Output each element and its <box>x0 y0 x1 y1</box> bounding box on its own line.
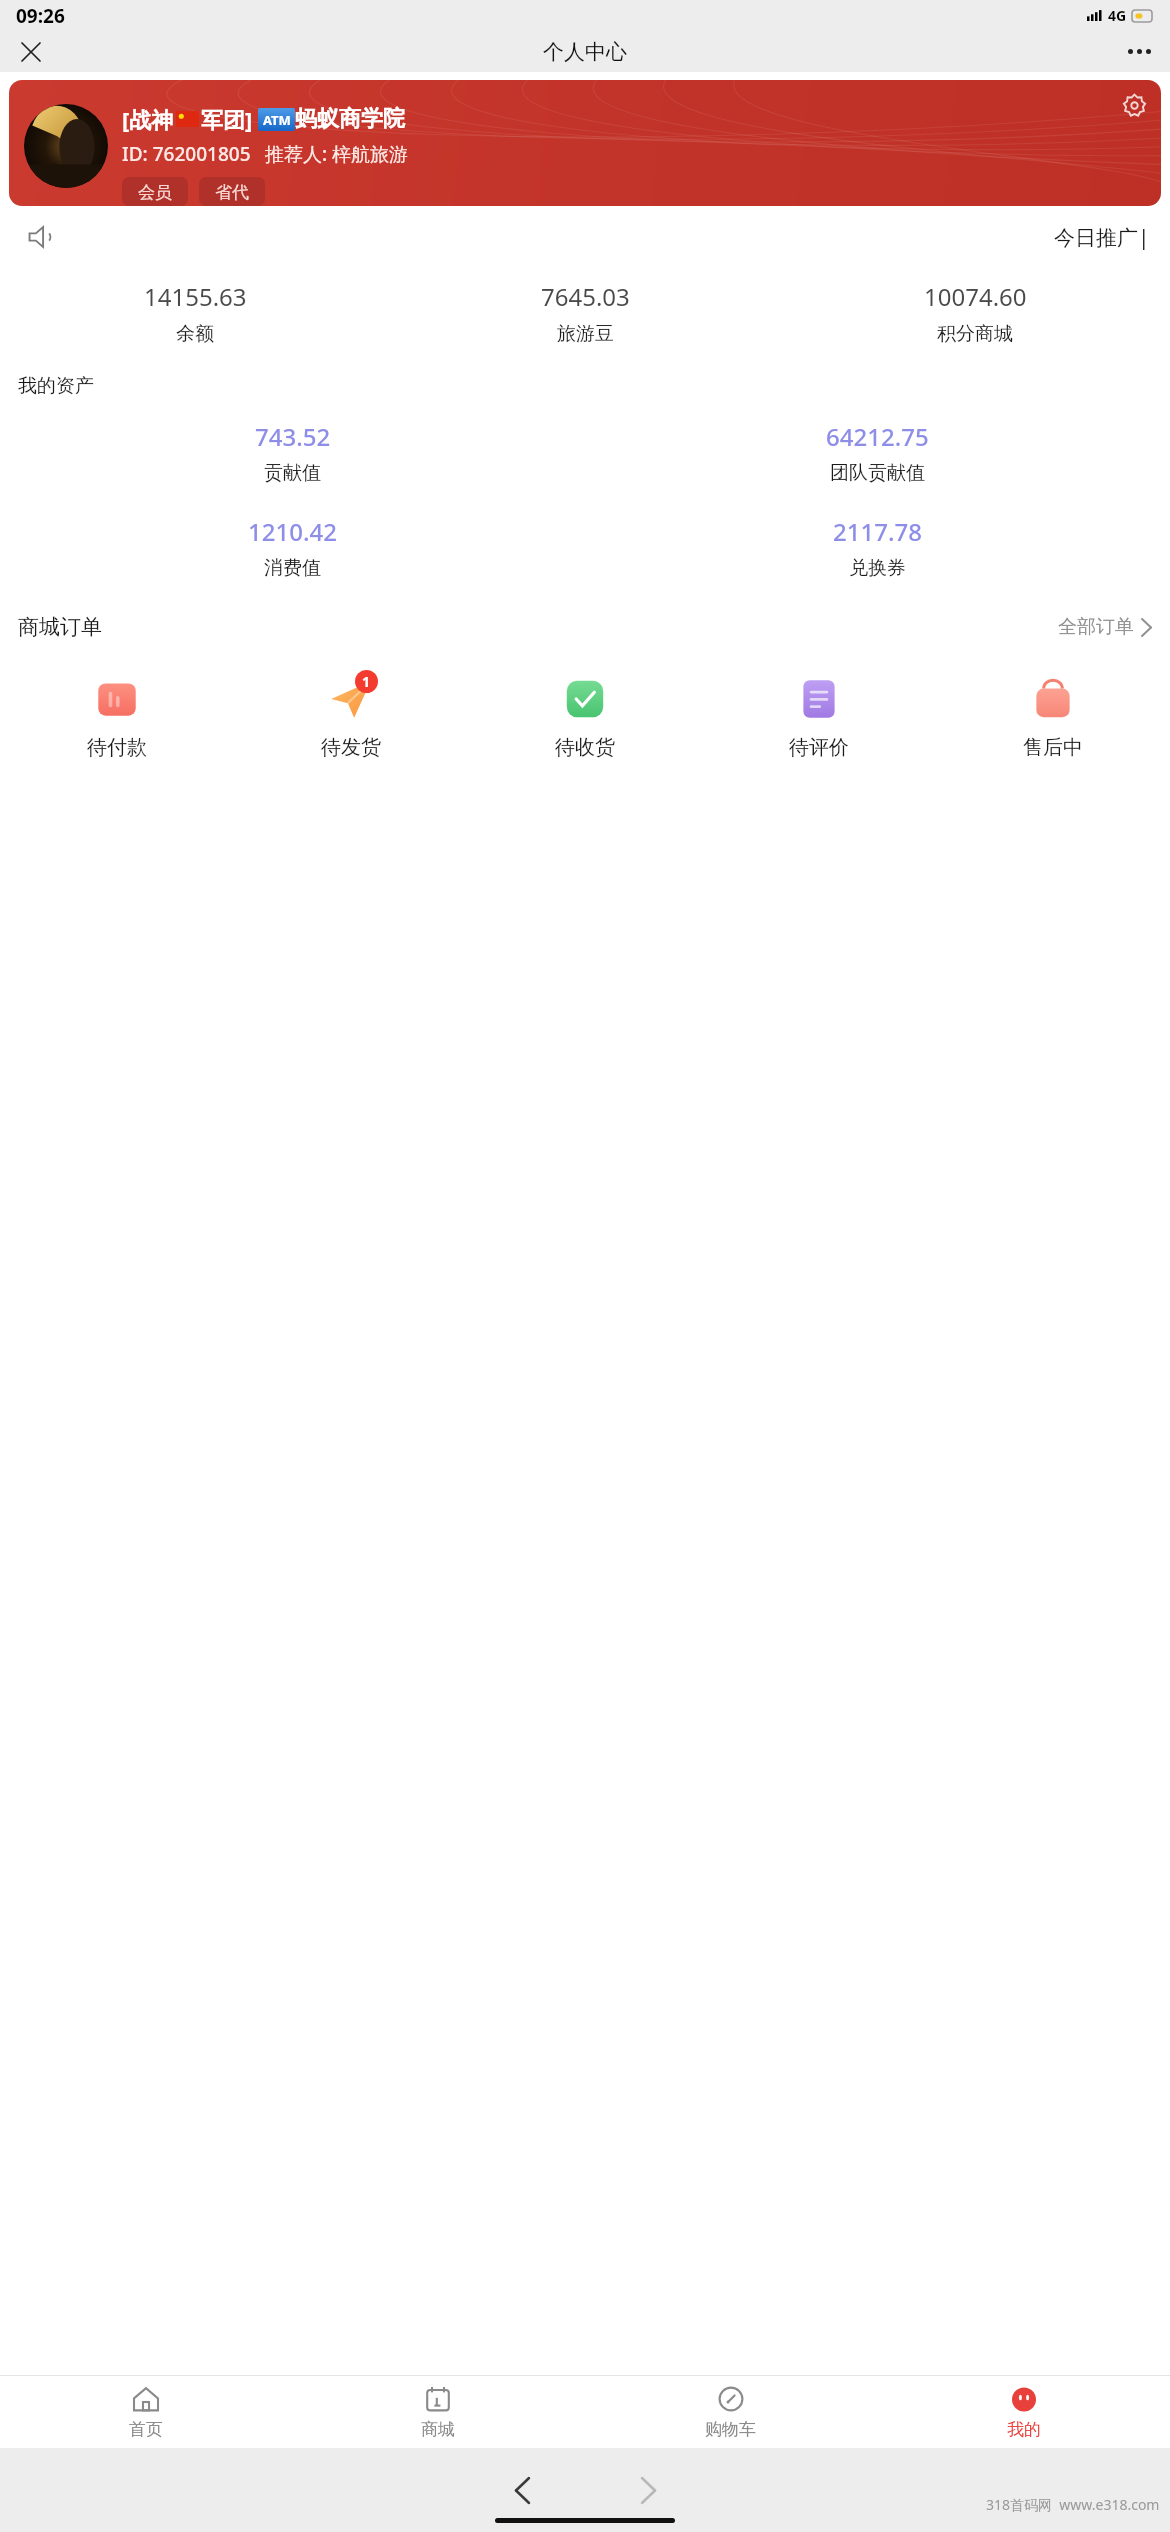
button[interactable]: 2117.78 <box>585 515 1170 580</box>
staticText: 我的资产 <box>18 374 94 398</box>
button[interactable]: 待评价 <box>702 666 936 764</box>
button[interactable]: Forward <box>623 2465 673 2515</box>
staticText: 团队贡献值 <box>830 461 925 485</box>
staticText: 1 <box>362 672 371 691</box>
button[interactable]: 14155.63 <box>0 274 390 352</box>
button[interactable]: More options <box>1116 31 1162 72</box>
staticText: 军团] <box>201 104 253 134</box>
staticText: 待发货 <box>321 735 381 760</box>
staticText: 待付款 <box>87 735 147 760</box>
button[interactable]: 待收货 <box>468 666 702 764</box>
staticText: 10074.60 <box>924 280 1027 313</box>
staticText: 743.52 <box>255 420 331 453</box>
button[interactable]: 会员 <box>122 177 188 206</box>
staticText: 积分商城 <box>937 322 1013 346</box>
staticText: 推荐人: 梓航旅游 <box>265 141 409 167</box>
button[interactable]: Settings <box>1115 86 1153 124</box>
staticText: 售后中 <box>1023 735 1083 760</box>
staticText: 待评价 <box>789 735 849 760</box>
staticText: ATM <box>263 111 291 129</box>
staticText: 待收货 <box>555 735 615 760</box>
staticText: 兑换券 <box>849 556 906 580</box>
staticText: 蚂蚁商学院 <box>295 105 405 133</box>
button[interactable]: 7645.03 <box>390 274 780 352</box>
staticText: 余额 <box>176 322 214 346</box>
button[interactable]: 10074.60 <box>780 274 1170 352</box>
button[interactable]: 1210.42 <box>0 515 585 580</box>
button[interactable]: 1 <box>234 666 468 764</box>
button[interactable]: 743.52 <box>0 420 585 485</box>
button[interactable]: Back <box>497 2465 547 2515</box>
button[interactable]: 购物车 <box>584 2376 877 2448</box>
button[interactable]: Avatar <box>24 104 108 188</box>
staticText: 商城 <box>421 2419 455 2440</box>
staticText: 09:26 <box>16 3 65 29</box>
button[interactable]: Close <box>8 31 54 72</box>
staticText: 4G <box>1108 6 1127 25</box>
staticText: 旅游豆 <box>557 322 614 346</box>
button[interactable]: Announcement <box>20 216 62 258</box>
staticText: [战神 <box>122 104 174 134</box>
staticText: 首页 <box>129 2419 163 2440</box>
staticText: 今日推广| <box>1054 223 1150 252</box>
staticText: 全部订单 <box>1058 615 1134 639</box>
staticText: 64212.75 <box>826 420 929 453</box>
staticText: 购物车 <box>705 2419 756 2440</box>
staticText: 2117.78 <box>833 515 922 548</box>
staticText: 贡献值 <box>264 461 321 485</box>
button[interactable]: 我的 <box>877 2376 1170 2448</box>
staticText: 318首码网 www.e318.com <box>986 2495 1160 2514</box>
button[interactable]: Settings <box>9 80 1161 206</box>
staticText: 1210.42 <box>248 515 337 548</box>
staticText: 商城订单 <box>18 614 102 640</box>
button[interactable]: 商城 <box>292 2376 584 2448</box>
button[interactable]: 售后中 <box>936 666 1170 764</box>
button[interactable]: 首页 <box>0 2376 292 2448</box>
staticText: 消费值 <box>264 556 321 580</box>
button[interactable]: 待付款 <box>0 666 234 764</box>
button[interactable]: 64212.75 <box>585 420 1170 485</box>
button[interactable]: 全部订单 <box>1058 615 1152 639</box>
staticText: 我的 <box>1007 2419 1041 2440</box>
button[interactable]: 省代 <box>199 177 265 206</box>
staticText: ID: 762001805 <box>122 141 251 167</box>
staticText: 14155.63 <box>144 280 247 313</box>
staticText: 省代 <box>215 182 249 201</box>
staticText: 7645.03 <box>541 280 630 313</box>
staticText: 个人中心 <box>543 39 627 65</box>
staticText: 会员 <box>138 182 172 201</box>
